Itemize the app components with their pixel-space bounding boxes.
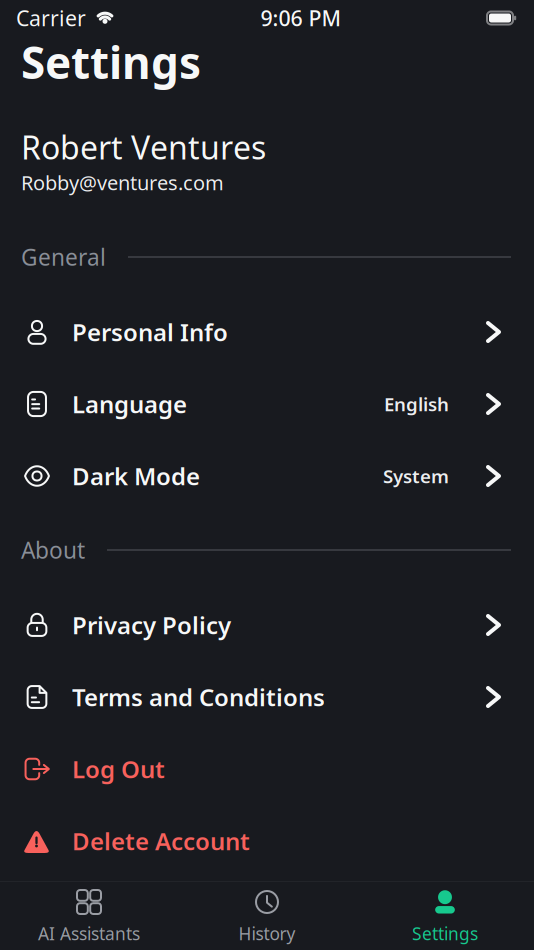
staticText: Personal Info [72,316,228,348]
staticText: English [384,392,449,416]
staticText: Privacy Policy [72,609,231,641]
staticText: AI Assistants [38,922,140,945]
button[interactable]: Terms and Conditions [0,661,534,733]
staticText: Dark Mode [72,460,200,492]
staticText: Log Out [72,753,165,785]
staticText: System [383,464,449,488]
button[interactable]: Language [0,368,534,440]
staticText: Settings [412,922,478,945]
button[interactable]: Dark Mode [0,440,534,512]
staticText: Robby@ventures.com [21,169,224,196]
staticText: History [238,922,295,945]
button[interactable]: Personal Info [0,296,534,368]
button[interactable]: Privacy Policy [0,589,534,661]
staticText: About [21,535,85,565]
button[interactable]: Delete Account [0,805,534,877]
staticText: General [21,242,106,272]
staticText: Robert Ventures [21,126,266,168]
staticText: Carrier [16,4,86,32]
button[interactable]: Settings [356,882,534,950]
staticText: Settings [21,33,201,91]
staticText: Language [72,388,187,420]
staticText: Delete Account [72,825,250,857]
staticText: Terms and Conditions [72,681,325,713]
button[interactable]: AI Assistants [0,882,178,950]
button[interactable]: Log Out [0,733,534,805]
button[interactable]: History [178,882,356,950]
staticText: 9:06 PM [260,4,341,32]
